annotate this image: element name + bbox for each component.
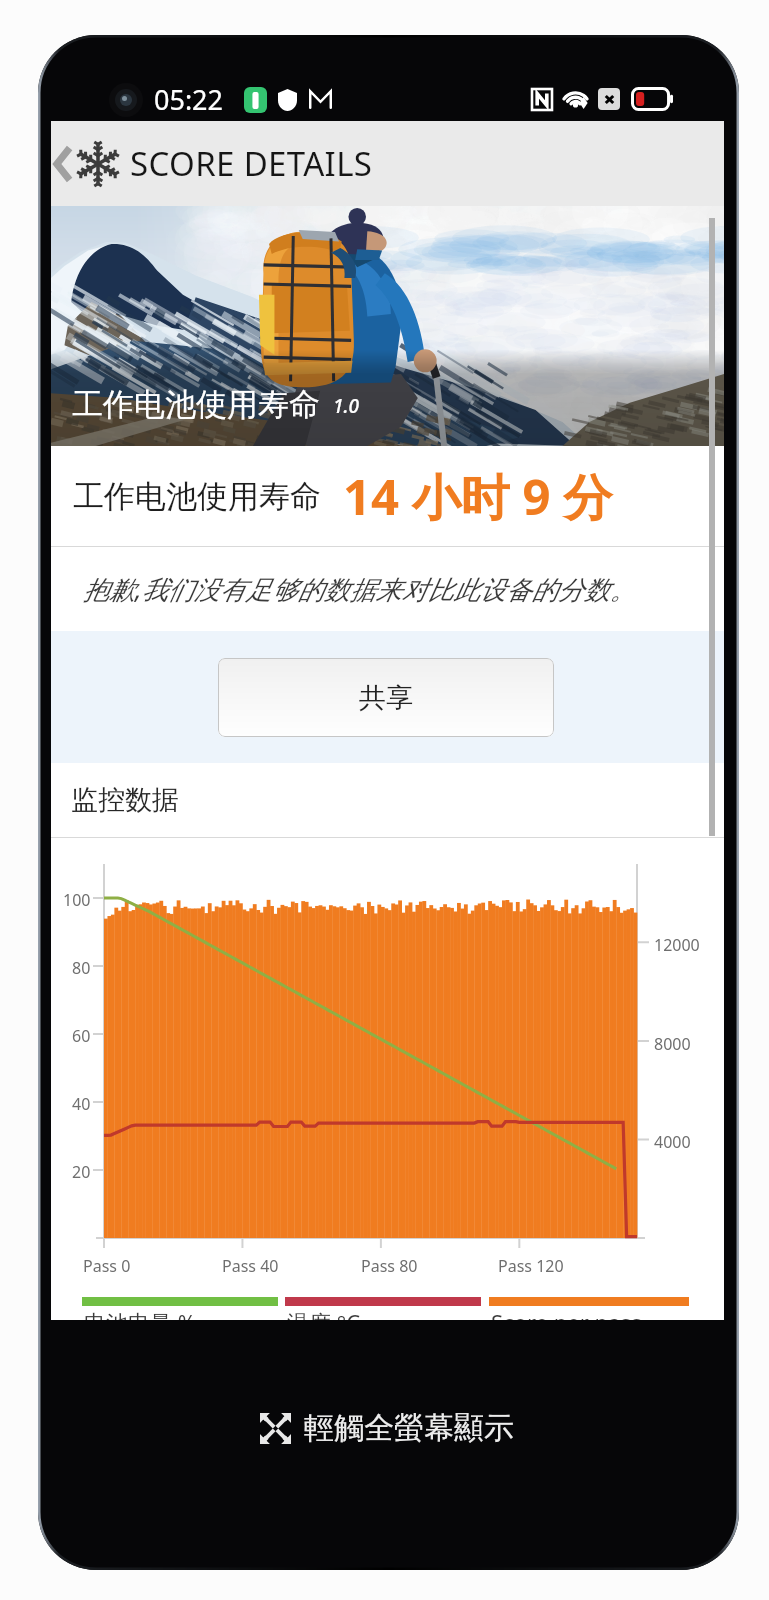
- staticText: 抱歉,我们没有足够的数据来对比此设备的分数。: [83, 571, 636, 607]
- button[interactable]: Back: [51, 121, 724, 206]
- staticText: Pass 40: [222, 1255, 279, 1277]
- staticText: 4000: [654, 1131, 691, 1153]
- staticText: 05:22: [154, 81, 224, 118]
- staticText: 工作电池使用寿命: [73, 477, 321, 516]
- button[interactable]: Tap for full screen: [51, 1320, 724, 1558]
- staticText: 电池电量 %: [84, 1307, 197, 1320]
- other: Back: [52, 143, 74, 185]
- staticText: 8000: [654, 1033, 691, 1055]
- staticText: 监控数据: [71, 783, 179, 817]
- staticText: 1.0: [333, 393, 359, 419]
- staticText: 60: [72, 1025, 91, 1047]
- staticText: 14 小时 9 分: [343, 463, 613, 530]
- staticText: Pass 120: [498, 1255, 564, 1277]
- staticText: 80: [72, 957, 91, 979]
- button[interactable]: 共享: [218, 658, 554, 737]
- staticText: 20: [72, 1161, 91, 1183]
- staticText: Score per pass: [491, 1307, 642, 1320]
- staticText: 12000: [654, 934, 700, 956]
- staticText: 共享: [359, 681, 413, 715]
- staticText: 温度 °C: [287, 1307, 361, 1320]
- staticText: SCORE DETAILS: [130, 141, 373, 186]
- staticText: 工作电池使用寿命: [72, 385, 320, 424]
- staticText: 輕觸全螢幕顯示: [304, 1409, 514, 1447]
- staticText: Pass 80: [361, 1255, 418, 1277]
- other: Tap for full screen: [259, 1412, 292, 1445]
- staticText: Pass 0: [83, 1255, 131, 1277]
- staticText: 100: [63, 889, 91, 911]
- staticText: 40: [72, 1093, 91, 1115]
